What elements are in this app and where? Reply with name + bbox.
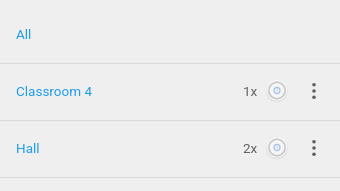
button[interactable]: More options — [302, 79, 326, 103]
staticText: Hall — [16, 140, 40, 156]
staticText: 1x — [243, 83, 258, 99]
button[interactable]: Hall — [0, 121, 340, 177]
button[interactable]: More options — [302, 136, 326, 160]
button[interactable]: Record — [265, 136, 289, 160]
staticText: Classroom 4 — [16, 83, 92, 99]
staticText: 2x — [243, 140, 258, 156]
button[interactable]: Classroom 4 — [0, 64, 340, 120]
staticText: All — [16, 26, 32, 42]
button[interactable]: Record — [265, 79, 289, 103]
button[interactable]: All — [0, 7, 340, 63]
